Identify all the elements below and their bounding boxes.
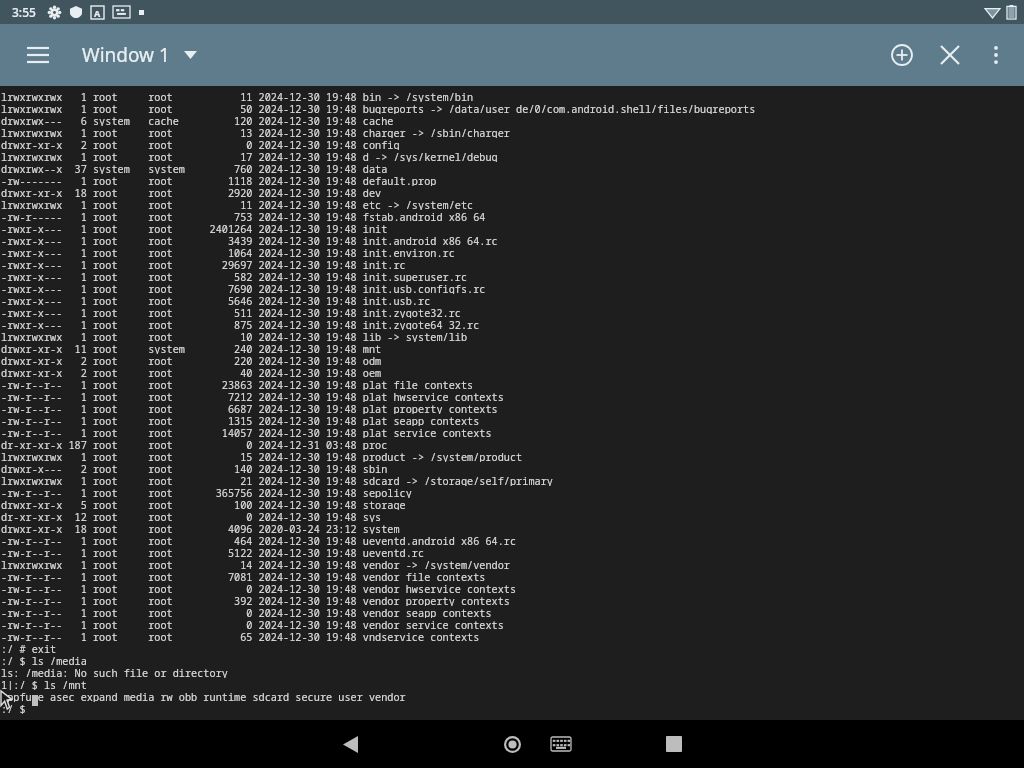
staticText: -rw-r--r-- 1 root root 0 2024-12-30 19:4… [1,582,517,594]
staticText: lrwxrwxrwx 1 root root 50 2024-12-30 19:… [1,102,756,114]
staticText: ls: /media: No such file or directory [1,666,228,678]
staticText: drwxr-xr-x 11 root system 240 2024-12-30… [1,342,382,354]
staticText: lrwxrwxrwx 1 root root 11 2024-12-30 19:… [1,90,474,102]
staticText: lrwxrwxrwx 1 root root 10 2024-12-30 19:… [1,330,468,342]
staticText: drwxrwx--x 37 system system 760 2024-12-… [1,162,388,174]
button[interactable]: New window [878,31,926,79]
staticText: drwxr-xr-x 2 root root 0 2024-12-30 19:4… [1,138,400,150]
staticText: -rwxr-x--- 1 root root 5646 2024-12-30 1… [1,294,431,306]
staticText: -rwxr-x--- 1 root root 2401264 2024-12-3… [1,222,388,234]
staticText: :/ # exit [1,642,57,654]
staticText: -rw-r--r-- 1 root root 14057 2024-12-30 … [1,426,492,438]
staticText: -rw-r--r-- 1 root root 0 2024-12-30 19:4… [1,618,504,630]
button[interactable]: Window 1 [74,34,205,76]
staticText: -rwxr-x--- 1 root root 7690 2024-12-30 1… [1,282,486,294]
staticText: -rwxr-x--- 1 root root 875 2024-12-30 19… [1,318,480,330]
button[interactable]: Open navigation menu [14,31,62,79]
staticText: -rw-r--r-- 1 root root 1315 2024-12-30 1… [1,414,480,426]
staticText: :/ $ ls /media [1,654,87,666]
button[interactable]: Recent apps [650,720,698,768]
staticText: -rw-r--r-- 1 root root 6687 2024-12-30 1… [1,402,498,414]
staticText: lrwxrwxrwx 1 root root 21 2024-12-30 19:… [1,474,553,486]
staticText: drwxrwx--- 6 system cache 120 2024-12-30… [1,114,394,126]
staticText: 1|:/ $ ls /mnt [1,678,87,690]
staticText: drwxr-x--- 2 root root 140 2024-12-30 19… [1,462,388,474]
staticText: -rwxr-x--- 1 root root 582 2024-12-30 19… [1,270,468,282]
button[interactable]: Show keyboard [537,720,585,768]
button[interactable]: Close window [926,31,974,79]
button[interactable]: Back [326,720,374,768]
button[interactable]: More options [974,33,1018,77]
staticText: A [94,7,101,19]
staticText: -rw-r--r-- 1 root root 392 2024-12-30 19… [1,594,510,606]
staticText: -rw-r--r-- 1 root root 365756 2024-12-30… [1,486,412,498]
staticText: -rw-r--r-- 1 root root 5122 2024-12-30 1… [1,546,425,558]
staticText: dr-xr-xr-x 12 root root 0 2024-12-30 19:… [1,510,382,522]
staticText: dr-xr-xr-x 187 root root 0 2024-12-31 03… [1,438,388,450]
staticText: -rw-r--r-- 1 root root 7212 2024-12-30 1… [1,390,504,402]
staticText: -rwxr-x--- 1 root root 1064 2024-12-30 1… [1,246,455,258]
staticText: lrwxrwxrwx 1 root root 14 2024-12-30 19:… [1,558,510,570]
staticText: -rw------- 1 root root 1118 2024-12-30 1… [1,174,437,186]
staticText: -rw-r----- 1 root root 753 2024-12-30 19… [1,210,486,222]
staticText: -rwxr-x--- 1 root root 29697 2024-12-30 … [1,258,406,270]
staticText: drwxr-xr-x 5 root root 100 2024-12-30 19… [1,498,406,510]
staticText: 3:55 [12,4,36,20]
staticText: -rwxr-x--- 1 root root 511 2024-12-30 19… [1,306,461,318]
staticText: lrwxrwxrwx 1 root root 17 2024-12-30 19:… [1,150,498,162]
staticText: lrwxrwxrwx 1 root root 11 2024-12-30 19:… [1,198,474,210]
staticText: drwxr-xr-x 18 root root 4096 2020-03-24 … [1,522,400,534]
staticText: -rw-r--r-- 1 root root 0 2024-12-30 19:4… [1,606,492,618]
staticText: -rw-r--r-- 1 root root 7081 2024-12-30 1… [1,570,486,582]
staticText: -rw-r--r-- 1 root root 65 2024-12-30 19:… [1,630,480,642]
staticText: lrwxrwxrwx 1 root root 13 2024-12-30 19:… [1,126,510,138]
staticText: drwxr-xr-x 18 root root 2920 2024-12-30 … [1,186,382,198]
staticText: lrwxrwxrwx 1 root root 15 2024-12-30 19:… [1,450,523,462]
staticText: -rwxr-x--- 1 root root 3439 2024-12-30 1… [1,234,498,246]
staticText: drwxr-xr-x 2 root root 40 2024-12-30 19:… [1,366,382,378]
staticText: Window 1 [82,42,170,68]
button[interactable]: Home [488,720,536,768]
staticText: :/ $ [1,702,32,714]
staticText: drwxr-xr-x 2 root root 220 2024-12-30 19… [1,354,382,366]
staticText: -rw-r--r-- 1 root root 464 2024-12-30 19… [1,534,517,546]
staticText: -rw-r--r-- 1 root root 23863 2024-12-30 … [1,378,474,390]
staticText: appfuse asec expand media_rw obb runtime… [1,690,406,702]
